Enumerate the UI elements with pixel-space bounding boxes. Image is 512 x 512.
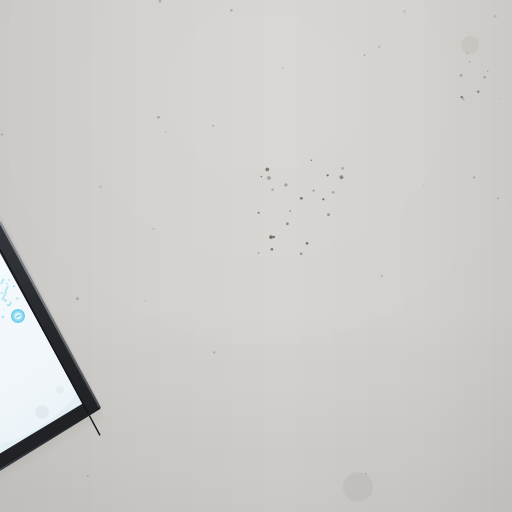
button[interactable]: Photo of a tablet corner against a wall: [0, 0, 512, 512]
